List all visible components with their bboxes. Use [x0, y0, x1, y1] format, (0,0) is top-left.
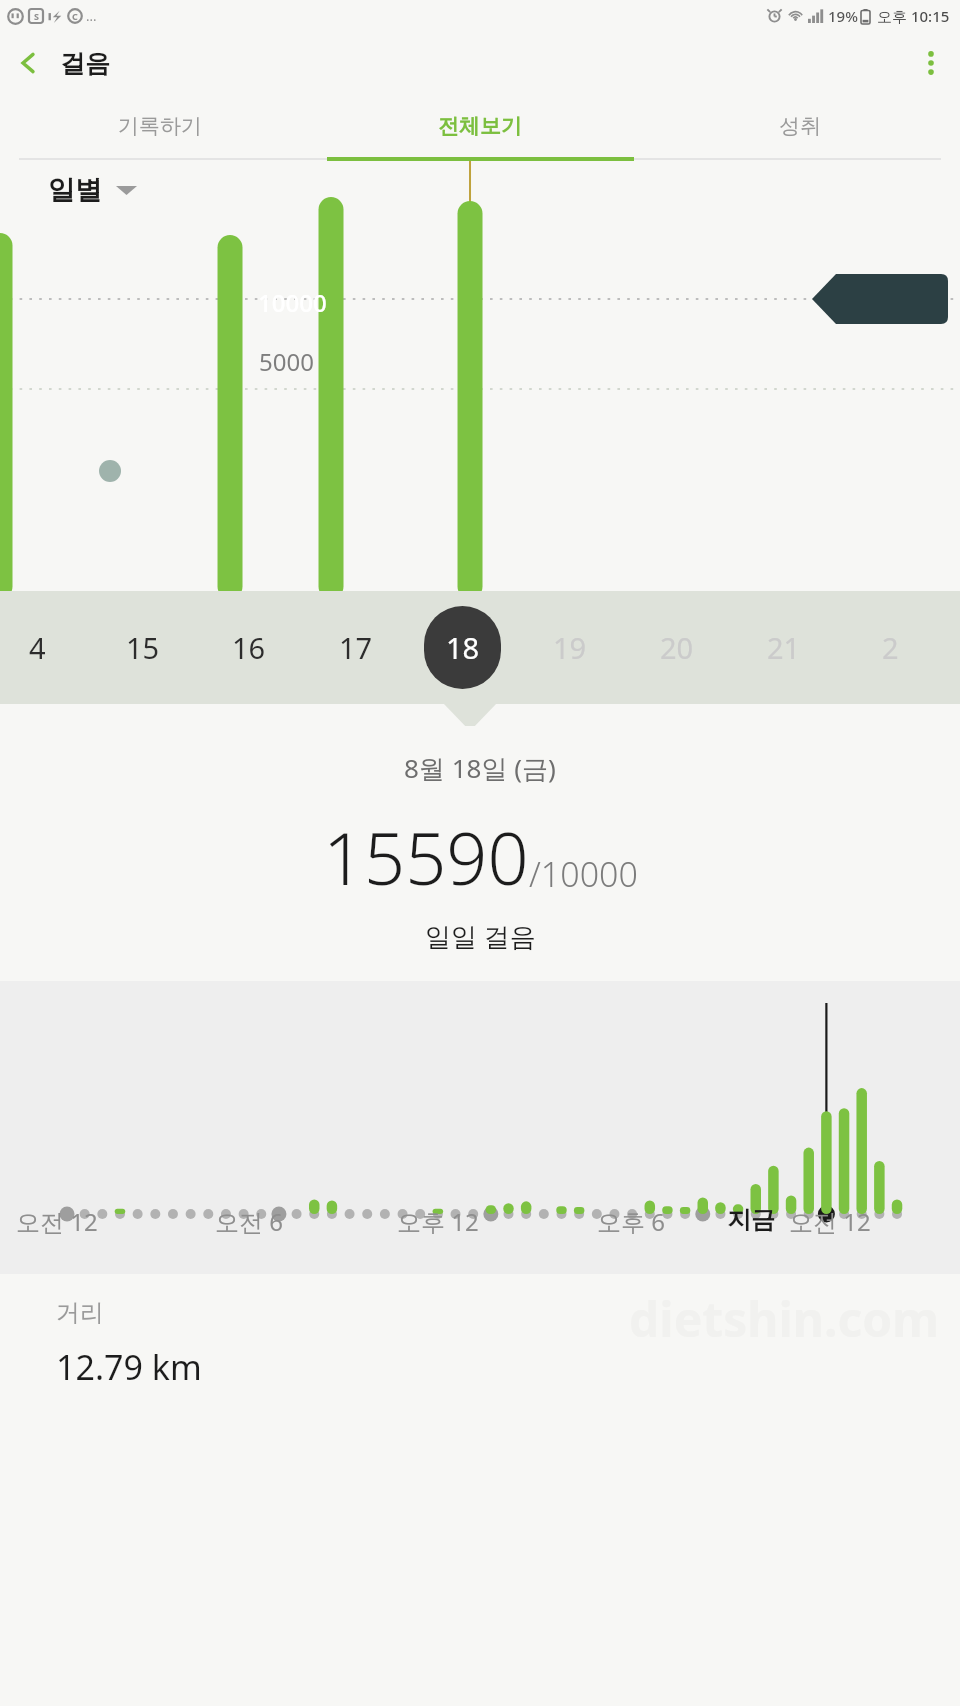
staticText: 19% [828, 6, 858, 26]
staticText: 18 [446, 628, 480, 667]
staticText: 12.79 km [56, 1344, 202, 1390]
button[interactable]: 16 [196, 591, 302, 704]
staticText: 15 [126, 628, 160, 667]
staticText: 21 [767, 628, 801, 667]
button[interactable]: 18 [409, 591, 516, 704]
staticText: 걸음 [60, 48, 110, 79]
staticText: 일별 [48, 173, 102, 207]
staticText: 16 [232, 628, 266, 667]
staticText: 8월 18일 (금) [404, 750, 556, 786]
staticText: 오후 6 [597, 1205, 665, 1238]
staticText: 10000 [258, 286, 327, 319]
staticText: 오후 10:15 [877, 6, 950, 26]
button[interactable]: 17 [302, 591, 409, 704]
staticText: 전체보기 [438, 113, 522, 139]
button[interactable]: 기록하기 [0, 95, 320, 157]
staticText: 기록하기 [118, 113, 202, 139]
staticText: 성취 [779, 113, 821, 139]
staticText: 오전 6 [215, 1205, 283, 1238]
staticText: S [34, 10, 39, 22]
staticText: 오전 12 [789, 1205, 871, 1238]
button[interactable]: More options [902, 34, 960, 92]
staticText: 오전 12 [16, 1205, 98, 1238]
button[interactable]: 전체보기 [320, 95, 640, 157]
staticText: 20 [660, 628, 694, 667]
button[interactable]: 일별 [48, 173, 137, 207]
staticText: 17 [339, 628, 373, 667]
staticText: 2 [882, 628, 899, 667]
staticText: ... [86, 7, 97, 25]
staticText: 지금 [727, 1205, 775, 1235]
staticText: 15590 [323, 808, 529, 906]
staticText: 4 [29, 628, 46, 667]
button[interactable]: 15 [90, 591, 196, 704]
staticText: 거리 [56, 1298, 104, 1328]
button[interactable]: 4 [0, 591, 90, 704]
button[interactable]: 20 [623, 591, 730, 704]
staticText: 오후 12 [397, 1205, 479, 1238]
staticText: 19 [553, 628, 587, 667]
staticText: /10000 [529, 851, 638, 897]
staticText: 5000 [259, 345, 314, 378]
staticText: C [72, 10, 78, 22]
button[interactable]: Back [0, 34, 58, 92]
button[interactable]: 성취 [640, 95, 960, 157]
staticText: 일일 걸음 [425, 918, 536, 954]
